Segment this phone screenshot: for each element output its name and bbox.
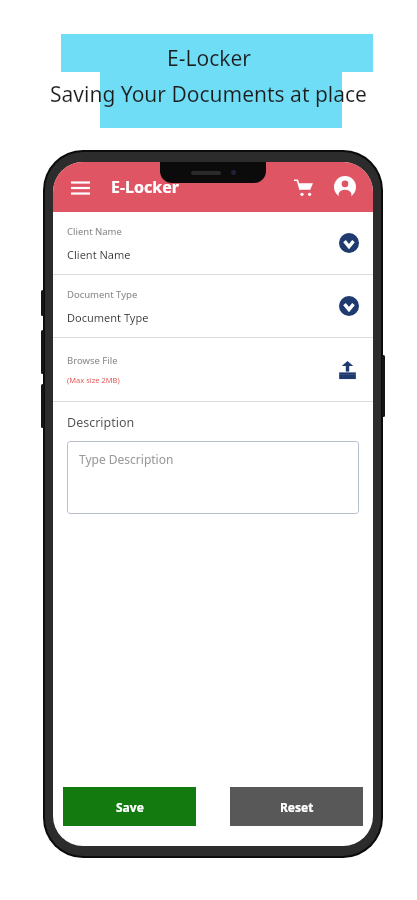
staticText: Client Name: [67, 225, 122, 238]
button[interactable]: Reset: [230, 787, 363, 826]
staticText: (Max size 2MB): [67, 375, 120, 385]
staticText: Document Type: [67, 288, 138, 301]
staticText: Reset: [280, 799, 314, 815]
staticText: Client Name: [67, 247, 131, 262]
staticText: Description: [67, 414, 135, 431]
button[interactable]: Cart: [287, 171, 319, 203]
staticText: Save: [116, 799, 144, 815]
staticText: E-Locker: [111, 176, 179, 198]
button[interactable]: Client Name: [53, 212, 373, 274]
staticText: Saving Your Documents at place: [50, 80, 367, 109]
staticText: E-Locker: [167, 44, 251, 73]
staticText: Document Type: [67, 310, 149, 325]
button[interactable]: Upload file: [335, 358, 359, 382]
button[interactable]: Open navigation menu: [65, 172, 95, 202]
button[interactable]: Account: [329, 171, 361, 203]
button[interactable]: Type Description: [67, 441, 359, 514]
button[interactable]: Open dropdown: [339, 233, 359, 253]
button[interactable]: Save: [63, 787, 196, 826]
staticText: Browse File: [67, 354, 118, 367]
button[interactable]: Browse File: [53, 338, 373, 401]
staticText: Type Description: [79, 451, 174, 467]
button[interactable]: Document Type: [53, 275, 373, 337]
button[interactable]: Open dropdown: [339, 296, 359, 316]
